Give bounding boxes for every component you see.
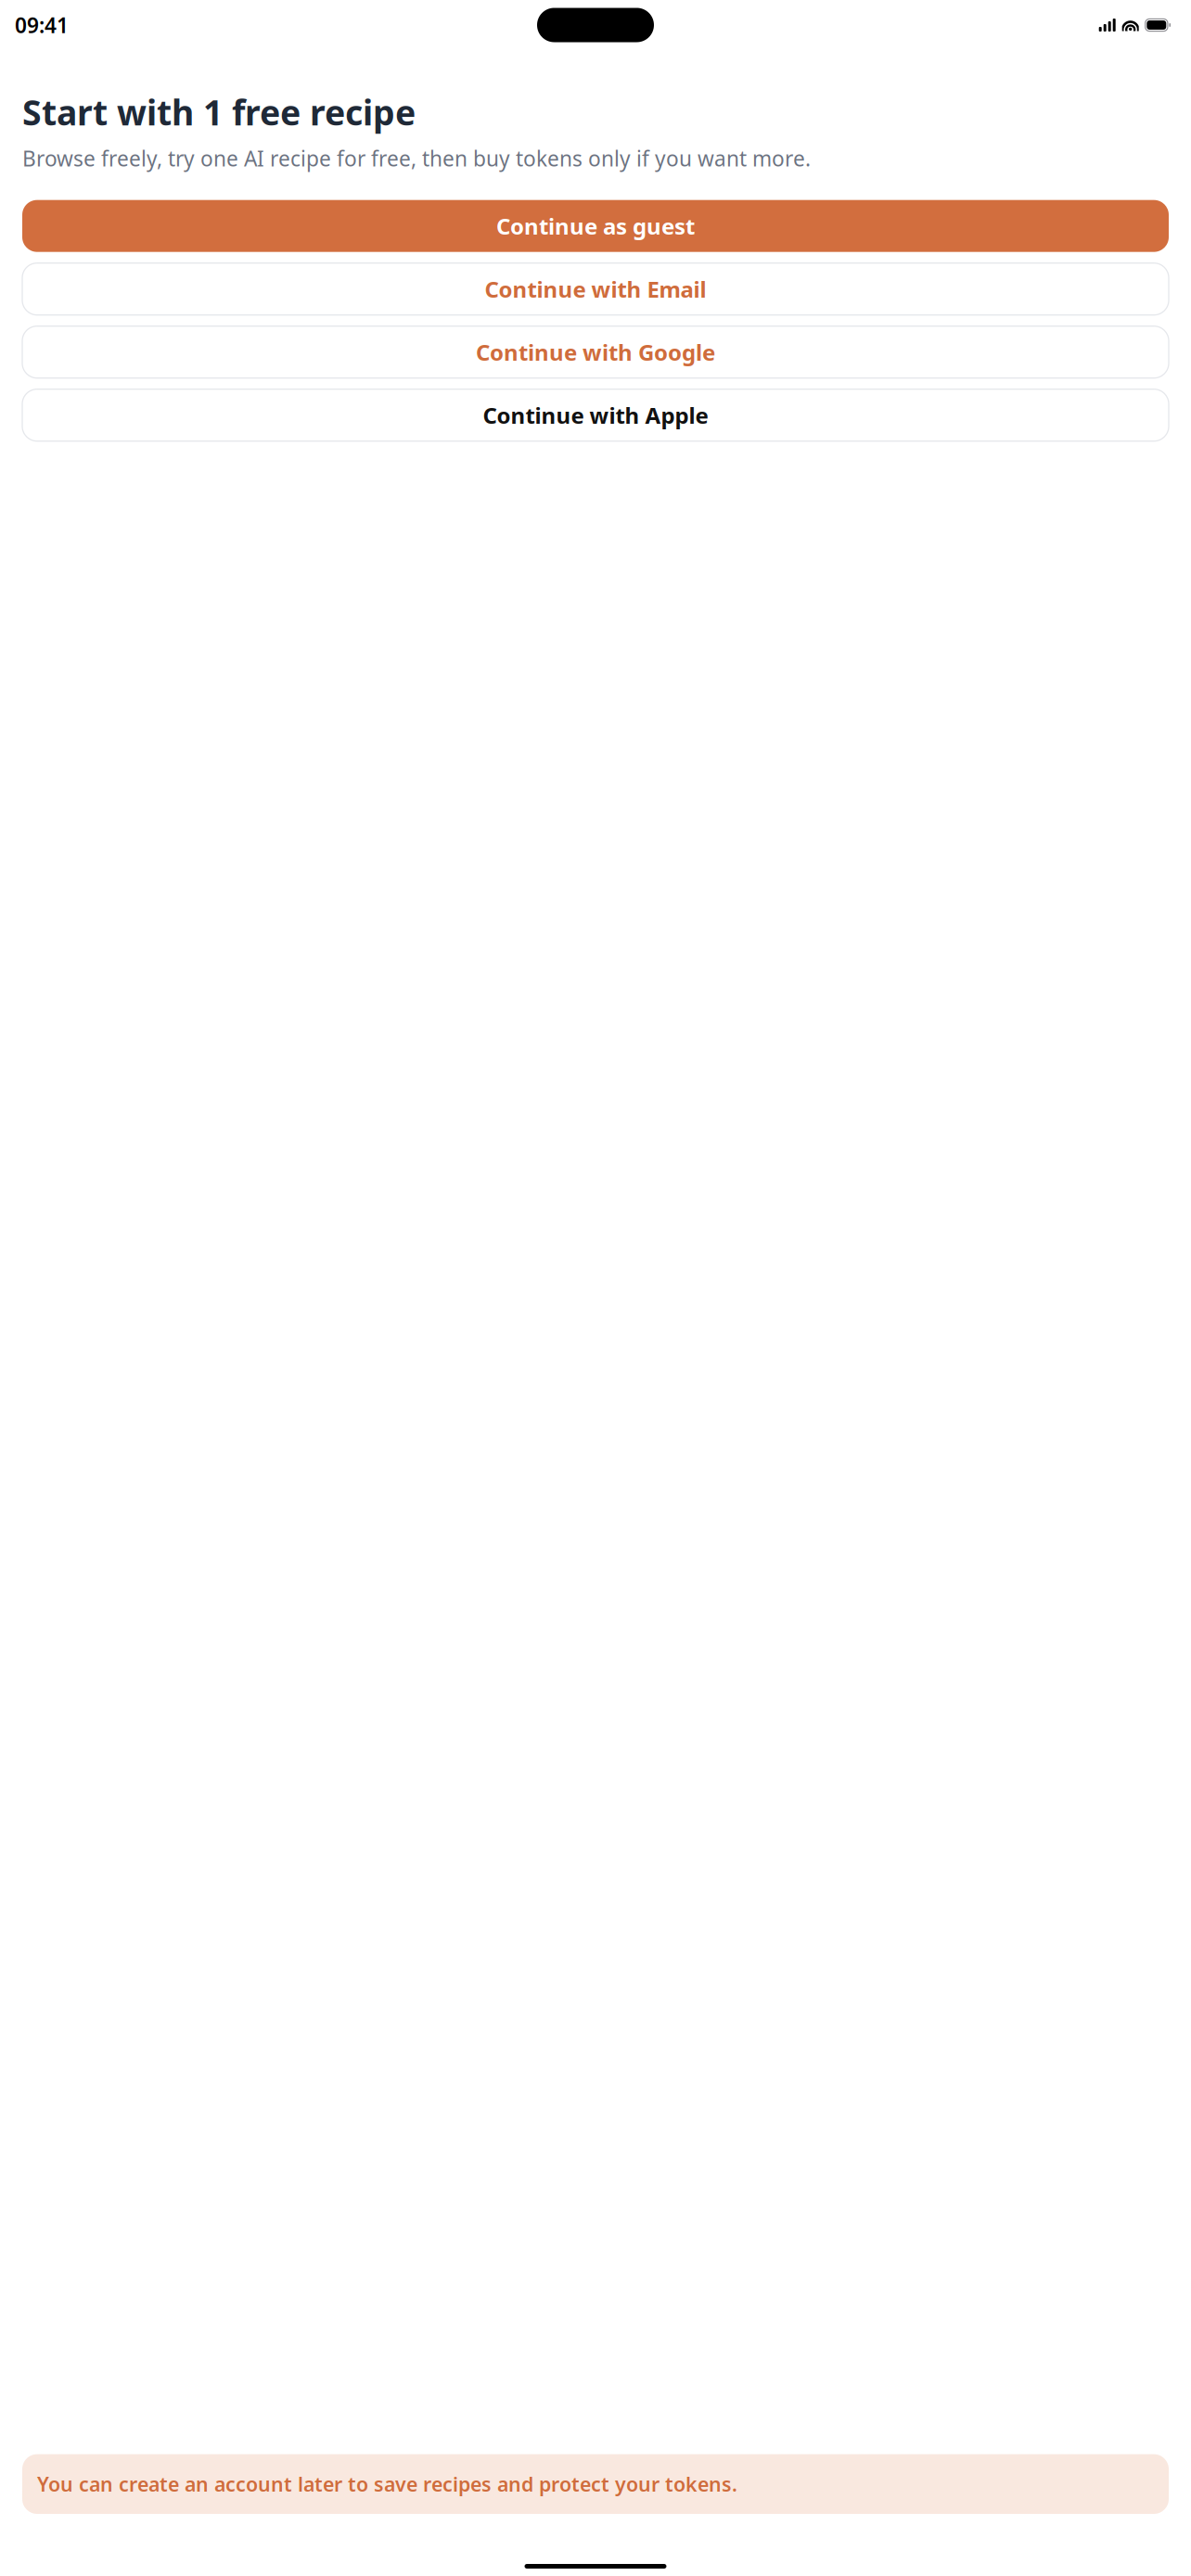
staticText: Continue with Email — [485, 274, 706, 304]
staticText: Start with 1 free recipe — [22, 89, 416, 135]
staticText: Continue with Google — [476, 337, 715, 367]
button[interactable]: Continue with Google — [22, 326, 1169, 378]
button[interactable]: Continue with Apple — [22, 389, 1169, 441]
staticText: You can create an account later to save … — [37, 2471, 737, 2497]
button[interactable]: Continue as guest — [22, 200, 1169, 252]
staticText: Continue with Apple — [483, 400, 708, 430]
button[interactable]: Continue with Email — [22, 263, 1169, 315]
staticText: Browse freely, try one AI recipe for fre… — [22, 144, 811, 172]
staticText: 09:41 — [15, 11, 69, 39]
staticText: Continue as guest — [496, 211, 695, 241]
